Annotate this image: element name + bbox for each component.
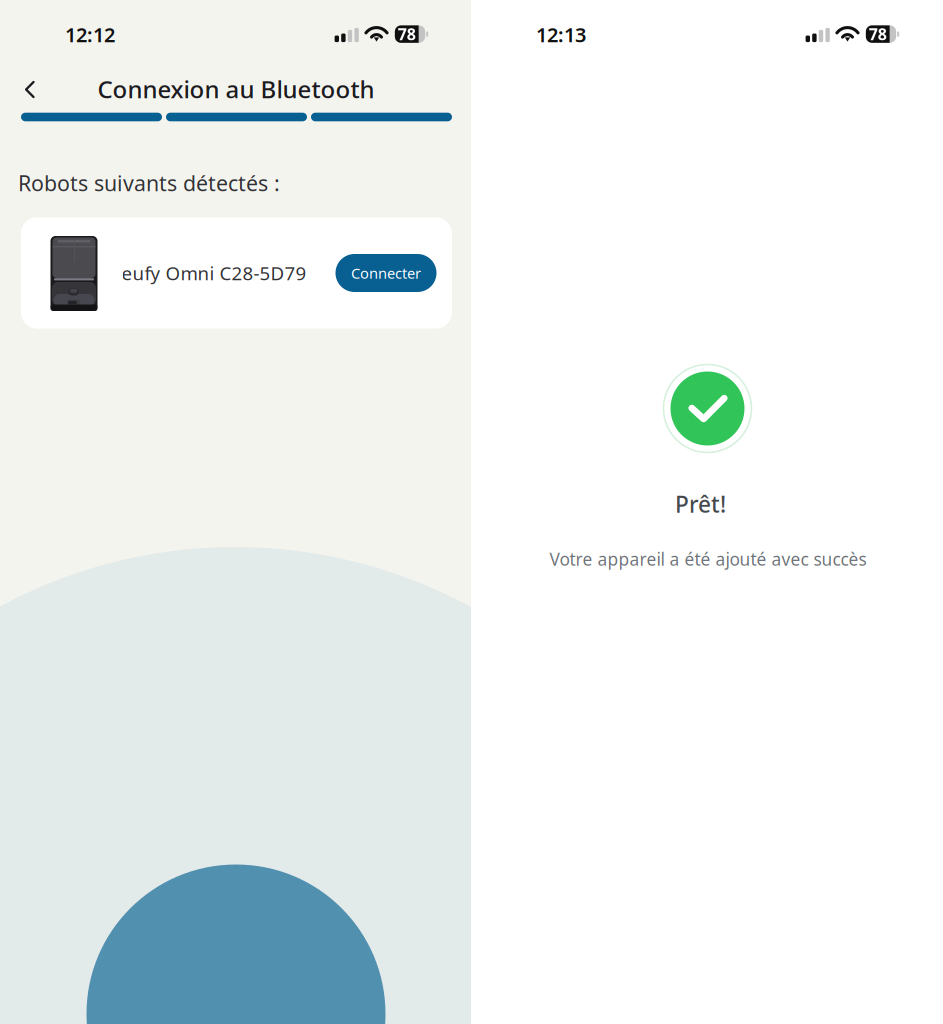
- staticText: Robots suivants détectés :: [18, 169, 280, 197]
- staticText: Connecter: [351, 263, 421, 283]
- staticText: Connexion au Bluetooth: [97, 73, 374, 105]
- button[interactable]: Connecter: [335, 254, 436, 292]
- staticText: 78: [869, 23, 887, 45]
- staticText: 12:13: [536, 21, 586, 48]
- button[interactable]: Back: [8, 69, 52, 109]
- staticText: eufy Omni C28-5D79: [121, 261, 306, 285]
- staticText: 12:12: [65, 21, 115, 48]
- staticText: Votre appareil a été ajouté avec succès: [549, 547, 866, 570]
- staticText: 78: [398, 23, 416, 45]
- staticText: Prêt!: [675, 489, 726, 519]
